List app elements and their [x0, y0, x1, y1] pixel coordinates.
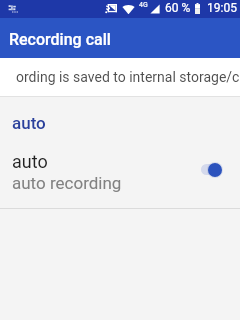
staticText: 60 %: [165, 1, 191, 15]
staticText: 4G: [139, 1, 148, 9]
staticText: auto recording: [12, 173, 122, 193]
staticText: 19:05: [207, 1, 237, 15]
staticText: auto: [12, 151, 48, 172]
staticText: auto: [12, 113, 46, 133]
button[interactable]: auto recording switch, on: [197, 156, 229, 184]
staticText: ording is saved to internal storage/c: [16, 69, 240, 85]
button[interactable]: auto: [0, 144, 240, 202]
button[interactable]: auto: [0, 105, 240, 135]
staticText: Recording call: [9, 30, 111, 49]
